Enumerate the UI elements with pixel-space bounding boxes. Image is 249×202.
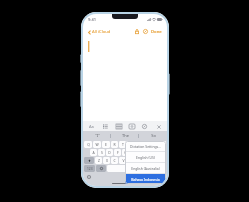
button[interactable]: D (106, 149, 113, 156)
staticText: All iCloud (92, 29, 111, 35)
button[interactable]: Share (132, 27, 141, 36)
button[interactable]: Checklist (101, 122, 110, 131)
staticText: K (148, 150, 151, 155)
button[interactable]: Shift (84, 157, 94, 164)
button[interactable]: U (135, 141, 142, 148)
staticText: B (131, 158, 134, 163)
button[interactable]: Text format (87, 122, 96, 131)
staticText: return (153, 167, 162, 171)
button[interactable]: M (146, 157, 154, 164)
button[interactable]: T (119, 141, 126, 148)
staticText: V (122, 158, 125, 163)
button[interactable]: Switch keyboard (86, 174, 92, 180)
staticText: E (105, 142, 107, 147)
button[interactable]: L (154, 149, 161, 156)
staticText: A (92, 150, 95, 155)
staticText: So (151, 133, 156, 138)
staticText: W (95, 142, 99, 147)
button[interactable]: Markup (140, 122, 149, 131)
button[interactable]: Emoji (96, 165, 106, 172)
staticText: Done (151, 29, 162, 35)
staticText: J (141, 150, 142, 155)
button[interactable]: E (102, 141, 110, 148)
button[interactable]: English (Australia) (125, 163, 166, 173)
staticText: U (137, 142, 140, 147)
staticText: Aa (89, 124, 94, 129)
staticText: X (106, 158, 108, 163)
button[interactable]: English (US) (125, 152, 166, 162)
button[interactable]: Insert photo (127, 122, 136, 131)
staticText: M (148, 158, 152, 163)
staticText: G (124, 150, 127, 155)
button[interactable]: C (111, 157, 118, 164)
button[interactable]: K (146, 149, 153, 156)
button[interactable]: Backspace (155, 157, 166, 164)
staticText: Z (98, 158, 100, 163)
button[interactable]: So (139, 131, 167, 140)
button[interactable]: "I" (83, 131, 111, 140)
button[interactable]: return (148, 165, 166, 172)
button[interactable]: B (128, 157, 136, 164)
staticText: R (113, 142, 116, 147)
staticText: S (101, 150, 103, 155)
button[interactable]: Dictation Settings… (125, 141, 166, 151)
button[interactable]: W (93, 141, 101, 148)
button[interactable]: Numbers (84, 165, 95, 172)
button[interactable]: Bahasa Indonesia (125, 174, 166, 184)
button[interactable]: O (151, 141, 158, 148)
staticText: T (122, 142, 124, 147)
button[interactable]: J (138, 149, 145, 156)
staticText: "I" (95, 133, 100, 138)
staticText: English (US) (136, 155, 155, 160)
staticText: Q (87, 142, 90, 147)
button[interactable]: N (137, 157, 145, 164)
button[interactable]: Z (95, 157, 102, 164)
button[interactable]: New note (141, 27, 150, 36)
button[interactable]: Close toolbar (154, 122, 163, 131)
button[interactable]: F (114, 149, 121, 156)
staticText: 123 (87, 167, 93, 171)
button[interactable]: I (143, 141, 150, 148)
button[interactable]: P (159, 141, 166, 148)
staticText: C (113, 158, 116, 163)
staticText: Y (130, 142, 132, 147)
staticText: F (117, 150, 119, 155)
staticText: English (Australia) (131, 166, 160, 171)
button[interactable]: Table (114, 122, 123, 131)
button[interactable]: Q (84, 141, 92, 148)
button[interactable]: A (90, 149, 97, 156)
button[interactable]: S (98, 149, 105, 156)
staticText: Bahasa Indonesia (131, 177, 160, 182)
button[interactable]: Dictate (158, 174, 164, 180)
button[interactable]: R (111, 141, 118, 148)
staticText: I (146, 142, 148, 147)
staticText: O (153, 142, 156, 147)
staticText: H (132, 150, 135, 155)
button[interactable]: X (103, 157, 110, 164)
button[interactable]: The (111, 131, 139, 140)
button[interactable]: H (130, 149, 137, 156)
button[interactable]: Y (127, 141, 134, 148)
staticText: 9:41 (88, 17, 96, 22)
button[interactable]: V (119, 157, 127, 164)
staticText: D (108, 150, 111, 155)
button[interactable]: All iCloud (87, 28, 112, 36)
staticText: The (122, 133, 129, 138)
staticText: N (140, 158, 143, 163)
staticText: L (157, 150, 159, 155)
button[interactable]: Space (107, 165, 147, 172)
button[interactable]: G (122, 149, 129, 156)
staticText: Dictation Settings… (130, 144, 161, 149)
button[interactable]: Done (150, 28, 163, 36)
